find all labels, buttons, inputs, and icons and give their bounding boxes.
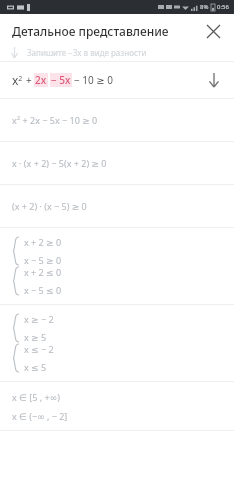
staticText: x − 5 ≥ 0 [24,254,62,266]
staticText: + [26,73,32,87]
button[interactable]: x2 + 2x − 5x − 10 ≥ 0 [0,99,234,141]
staticText: Запишите −3x в виде разности [27,47,147,58]
staticText: x ∈ [5 , +∞) [12,391,60,403]
button[interactable]: x ≥ − 2 [0,305,234,381]
button[interactable]: x2 [0,62,234,98]
button[interactable]: x + 2 ≥ 0 [0,228,234,304]
staticText: (x + 2) · (x − 5) ≥ 0 [12,200,87,212]
button[interactable]: Закрыть [198,16,228,46]
staticText: x ≥ − 2 [24,313,54,325]
staticText: − 5x [51,73,71,87]
staticText: − 10 ≥ 0 [74,73,114,87]
staticText: x ≥ 5 [24,331,47,343]
staticText: x ∈ (−∞ , − 2] [12,410,68,422]
button[interactable]: (x + 2) · (x − 5) ≥ 0 [0,185,234,227]
staticText: x2 [12,72,23,88]
staticText: Детальное представление [12,23,169,39]
staticText: x ≤ − 2 [24,343,54,355]
staticText: 8% [200,3,209,11]
staticText: x · (x + 2) − 5(x + 2) ≥ 0 [12,157,107,169]
staticText: x + 2 ≤ 0 [24,266,62,278]
staticText: x − 5 ≤ 0 [24,284,62,296]
button[interactable]: Развернуть [202,68,226,92]
button[interactable]: x ∈ [5 , +∞) [0,382,234,430]
staticText: x ≤ 5 [24,361,47,373]
staticText: 2x [35,73,47,87]
staticText: x2 + 2x − 5x − 10 ≥ 0 [12,114,98,126]
button[interactable]: x · (x + 2) − 5(x + 2) ≥ 0 [0,142,234,184]
staticText: 0:56 [217,3,229,11]
staticText: x + 2 ≥ 0 [24,236,62,248]
